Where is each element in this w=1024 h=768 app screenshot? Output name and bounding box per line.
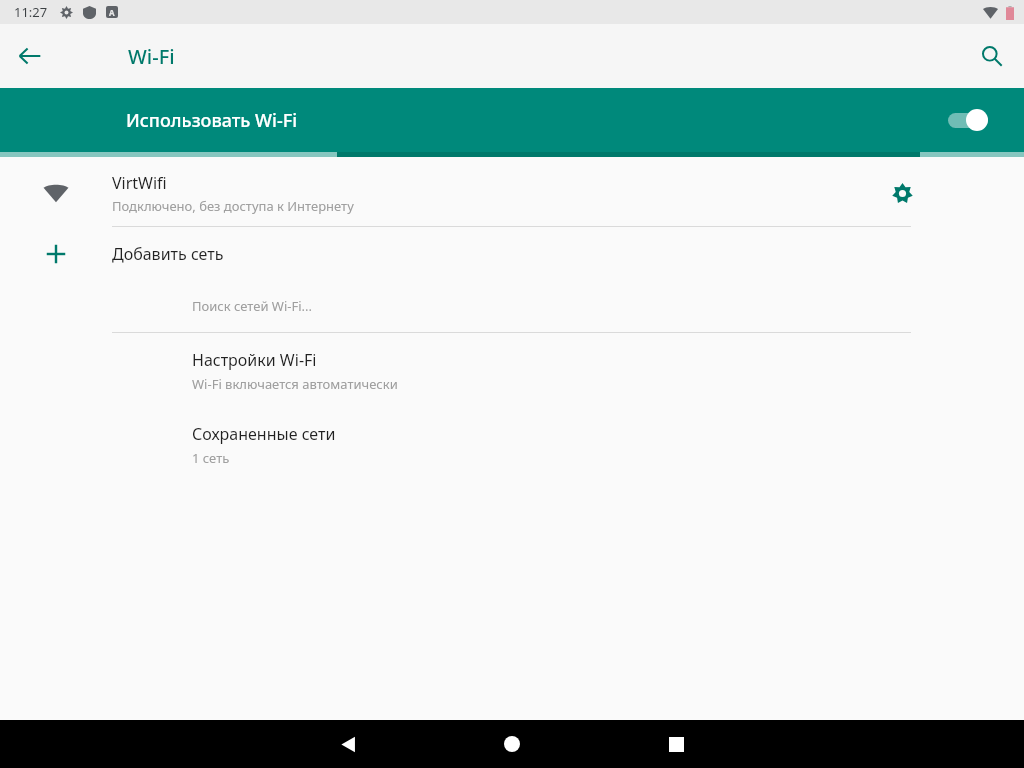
button[interactable]: Недавние приложения (652, 720, 700, 768)
button[interactable]: VirtWifi (0, 160, 1024, 226)
staticText: Добавить сеть (112, 243, 224, 265)
staticText: Wi-Fi включается автоматически (192, 375, 398, 393)
staticText: Сохраненные сети (192, 423, 336, 445)
button[interactable]: Назад (6, 32, 54, 80)
button[interactable]: Настройки сети (880, 171, 924, 215)
staticText: Поиск сетей Wi-Fi... (192, 297, 313, 315)
button[interactable]: Сохраненные сети (0, 401, 1024, 475)
staticText: A (109, 7, 115, 18)
staticText: 11:27 (14, 3, 48, 21)
staticText: Wi-Fi (128, 43, 175, 70)
button[interactable]: Настройки Wi-Fi (0, 333, 1024, 401)
staticText: Использовать Wi-Fi (126, 108, 298, 133)
button[interactable]: Назад (324, 720, 372, 768)
staticText: VirtWifi (112, 172, 167, 194)
staticText: Настройки Wi-Fi (192, 349, 317, 371)
button[interactable]: Главный экран (488, 720, 536, 768)
staticText: Подключено, без доступа к Интернету (112, 197, 354, 215)
staticText: 1 сеть (192, 449, 230, 467)
button[interactable]: Поиск (968, 32, 1016, 80)
other: Переключатель Wi-Fi (944, 104, 996, 136)
button[interactable]: Использовать Wi-Fi (0, 88, 1024, 152)
button[interactable]: Добавить сеть (0, 227, 1024, 280)
